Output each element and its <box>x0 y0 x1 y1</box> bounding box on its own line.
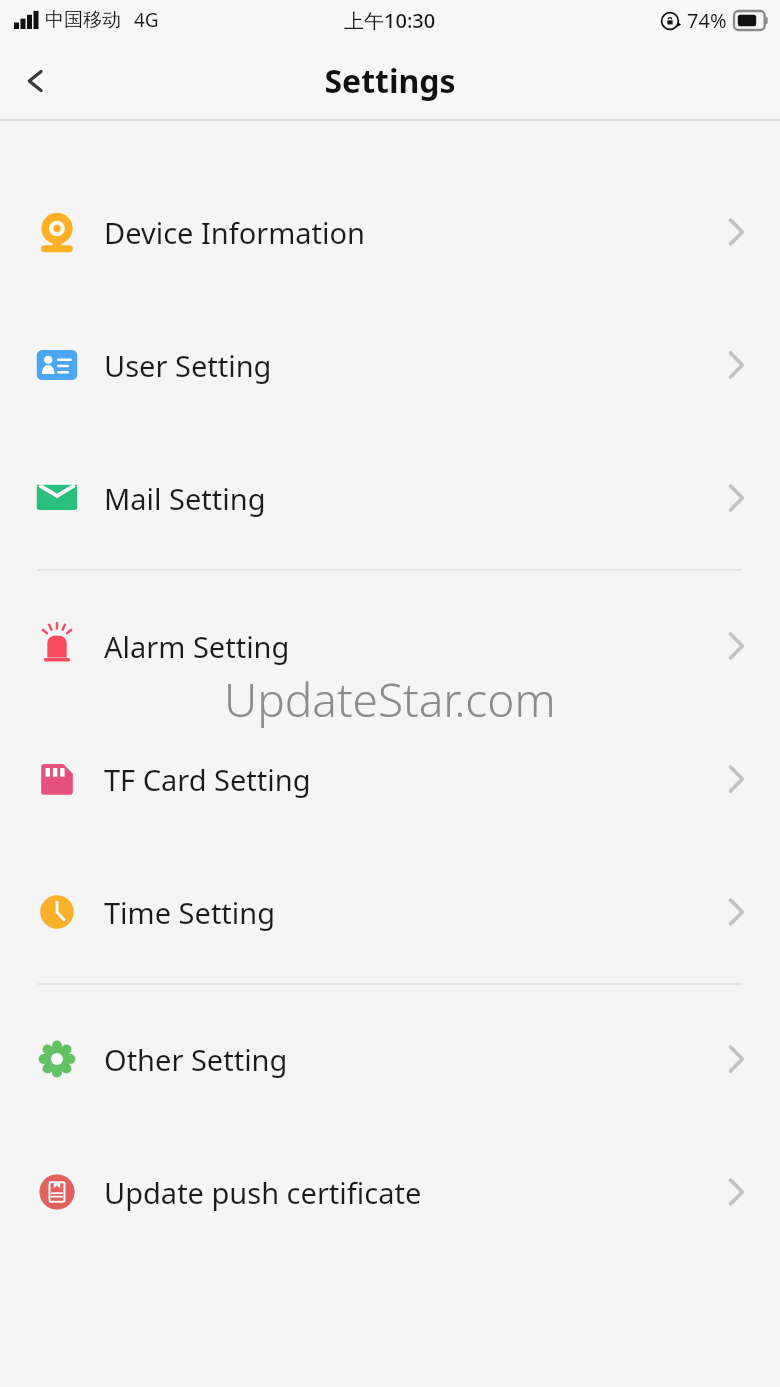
staticText: Time Setting <box>104 893 728 932</box>
staticText: 74% <box>687 7 727 34</box>
staticText: TF Card Setting <box>104 760 728 799</box>
button[interactable]: User Setting <box>0 338 780 392</box>
button[interactable]: TF Card Setting <box>0 752 780 806</box>
button[interactable]: Time Setting <box>0 885 780 939</box>
staticText: Other Setting <box>104 1040 728 1079</box>
staticText: Mail Setting <box>104 479 728 518</box>
button[interactable]: Back <box>0 45 72 117</box>
button[interactable]: Mail Setting <box>0 471 780 525</box>
staticText: 中国移动 <box>45 8 121 32</box>
staticText: Device Information <box>104 213 728 252</box>
staticText: User Setting <box>104 346 728 385</box>
staticText: UpdateStar.com <box>224 668 556 731</box>
staticText: Settings <box>324 59 456 103</box>
button[interactable]: Alarm Setting <box>0 619 780 673</box>
button[interactable]: Device Information <box>0 205 780 259</box>
staticText: Update push certificate <box>104 1173 728 1212</box>
staticText: 4G <box>134 7 159 33</box>
staticText: 上午10:30 <box>344 7 436 34</box>
staticText: Alarm Setting <box>104 627 728 666</box>
button[interactable]: Other Setting <box>0 1032 780 1086</box>
button[interactable]: Update push certificate <box>0 1165 780 1219</box>
